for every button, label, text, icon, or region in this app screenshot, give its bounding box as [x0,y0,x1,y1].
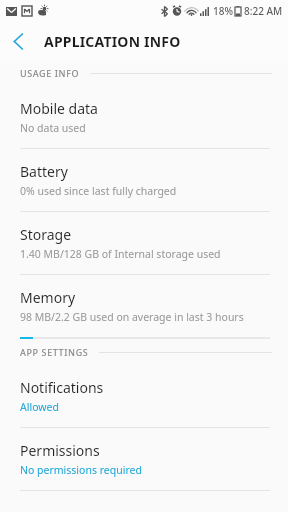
staticText: Battery [20,162,68,181]
staticText: USAGE INFO [20,67,80,79]
staticText: 18% [213,4,233,18]
staticText: Mobile data [20,99,98,118]
staticText: 0% used since last fully charged [20,184,177,198]
button[interactable]: Permissions [0,428,288,490]
button[interactable]: Battery [0,149,288,211]
button[interactable]: Notifications [0,365,288,427]
button[interactable]: Back [0,23,36,59]
staticText: APPLICATION INFO [44,32,181,51]
staticText: Notifications [20,378,104,397]
staticText: 1.40 MB/128 GB of Internal storage used [20,247,221,261]
staticText: 8:22 AM [244,4,283,18]
button[interactable]: Memory [0,275,288,337]
button[interactable]: Mobile data [0,86,288,148]
staticText: APP SETTINGS [20,346,89,358]
staticText: Storage [20,225,72,244]
staticText: Permissions [20,441,100,460]
staticText: No permissions required [20,463,142,477]
button[interactable]: Storage [0,212,288,274]
staticText: 98 MB/2.2 GB used on average in last 3 h… [20,310,244,324]
staticText: Memory [20,288,76,307]
staticText: Allowed [20,400,59,414]
staticText: No data used [20,121,86,135]
